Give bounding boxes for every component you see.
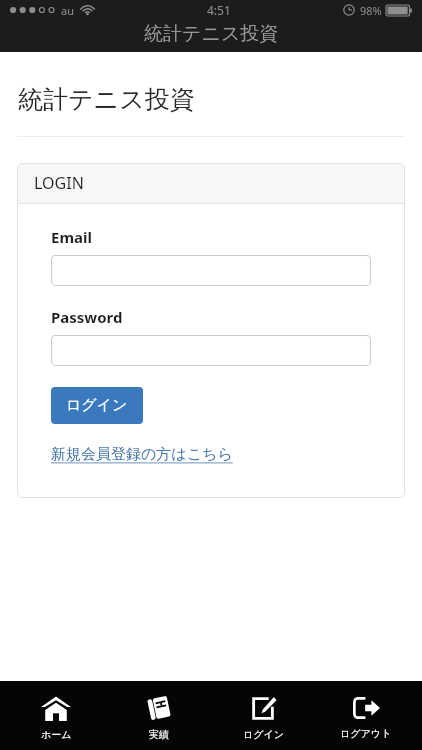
staticText: 実績 xyxy=(149,728,169,741)
staticText: 98% xyxy=(360,3,382,18)
button[interactable] xyxy=(51,255,371,286)
staticText: au xyxy=(61,3,74,18)
staticText: LOGIN xyxy=(34,172,84,194)
staticText: Password xyxy=(51,307,123,327)
staticText: 統計テニス投資 xyxy=(18,84,195,115)
staticText: ログイン xyxy=(66,396,128,415)
staticText: ホーム xyxy=(41,728,72,741)
staticText: 新規会員登録の方はこちら xyxy=(51,445,233,464)
staticText: ログイン xyxy=(243,728,284,741)
button[interactable]: Records xyxy=(111,681,207,750)
button[interactable]: Home xyxy=(8,681,104,750)
button[interactable]: Login xyxy=(215,681,311,750)
button[interactable]: ログイン xyxy=(51,387,143,424)
button[interactable]: Logout xyxy=(318,681,414,750)
staticText: 4:51 xyxy=(207,2,231,18)
staticText: Email xyxy=(51,227,92,247)
button[interactable]: 新規会員登録の方はこちら xyxy=(51,445,233,464)
staticText: 統計テニス投資 xyxy=(144,22,279,46)
staticText: ログアウト xyxy=(340,727,392,740)
button[interactable] xyxy=(51,335,371,366)
